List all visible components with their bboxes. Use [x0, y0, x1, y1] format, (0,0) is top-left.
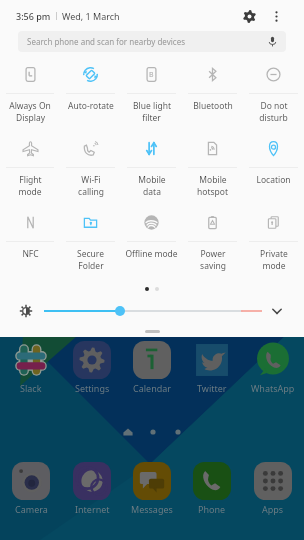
button[interactable]: NFC: [0, 204, 60, 278]
button[interactable]: Secure: [60, 204, 121, 278]
button[interactable]: Flight: [0, 130, 60, 204]
staticText: mode: [18, 186, 42, 198]
staticText: Location: [256, 174, 291, 186]
button[interactable]: Mobile: [121, 130, 182, 204]
button[interactable]: Private: [243, 204, 304, 278]
staticText: Mobile: [199, 174, 227, 186]
staticText: Display: [16, 112, 45, 124]
staticText: calling: [78, 186, 104, 198]
staticText: Offline mode: [125, 248, 178, 260]
button[interactable]: Slack: [2, 341, 60, 394]
staticText: Slack: [20, 382, 42, 394]
button[interactable]: Auto-rotate: [60, 56, 121, 130]
staticText: data: [143, 186, 161, 198]
staticText: mode: [262, 260, 286, 272]
staticText: WhatsApp: [251, 382, 295, 394]
button[interactable]: B: [121, 56, 182, 130]
staticText: Internet: [75, 503, 110, 515]
button[interactable]: Internet: [63, 462, 121, 515]
staticText: NFC: [22, 248, 39, 260]
staticText: filter: [142, 112, 161, 124]
staticText: Folder: [78, 260, 104, 272]
button[interactable]: Power: [182, 204, 243, 278]
staticText: Phone: [198, 503, 226, 515]
button[interactable]: Apps: [244, 462, 302, 515]
staticText: Messages: [131, 503, 173, 515]
button[interactable]: Location: [243, 130, 304, 204]
button[interactable]: Search phone and scan for nearby devices: [18, 31, 286, 52]
staticText: Wed, 1 March: [62, 10, 120, 22]
button[interactable]: Wi-Fi: [60, 130, 121, 204]
button[interactable]: Settings: [63, 341, 121, 394]
staticText: saving: [200, 260, 226, 272]
staticText: Do not: [260, 100, 288, 112]
button[interactable]: Twitter: [183, 341, 241, 394]
staticText: Private: [260, 248, 288, 260]
button[interactable]: Mobile: [182, 130, 243, 204]
staticText: Twitter: [197, 382, 227, 394]
staticText: Camera: [15, 503, 48, 515]
button[interactable]: WhatsApp: [244, 341, 302, 394]
staticText: Settings: [75, 382, 110, 394]
button[interactable]: Always On: [0, 56, 60, 130]
button[interactable]: Do not: [243, 56, 304, 130]
staticText: disturb: [259, 112, 288, 124]
staticText: Calendar: [133, 382, 171, 394]
staticText: Always On: [9, 100, 51, 112]
staticText: Wi-Fi: [81, 174, 101, 186]
button[interactable]: Bluetooth: [182, 56, 243, 130]
staticText: Mobile: [138, 174, 166, 186]
button[interactable]: Calendar: [123, 341, 181, 394]
staticText: B: [149, 70, 154, 80]
button[interactable]: Messages: [123, 462, 181, 515]
staticText: Bluetooth: [193, 100, 233, 112]
staticText: Search phone and scan for nearby devices: [27, 36, 185, 47]
button[interactable]: Offline mode: [121, 204, 182, 278]
staticText: Apps: [262, 503, 284, 515]
button[interactable]: Settings: [237, 4, 261, 28]
staticText: Power: [200, 248, 226, 260]
staticText: Blue light: [133, 100, 171, 112]
staticText: 3:56 pm: [16, 10, 51, 22]
button[interactable]: Phone: [183, 462, 241, 515]
button[interactable]: More options: [265, 5, 287, 27]
button[interactable]: Expand brightness settings: [268, 300, 288, 320]
staticText: hotspot: [197, 186, 228, 198]
staticText: Secure: [77, 248, 104, 260]
staticText: Flight: [19, 174, 42, 186]
button[interactable]: Camera: [2, 462, 60, 515]
staticText: Auto-rotate: [68, 100, 114, 112]
